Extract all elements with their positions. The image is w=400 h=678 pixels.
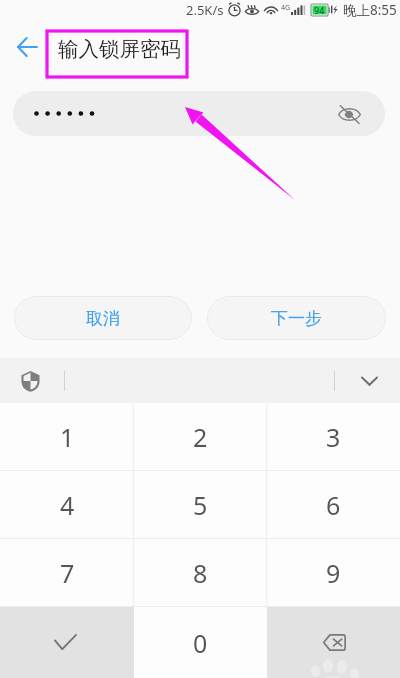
button[interactable]: 1 (0, 403, 134, 471)
staticText: 5 (193, 488, 208, 522)
staticText: 1 (60, 420, 75, 454)
button[interactable]: 取消 (14, 296, 192, 340)
staticText: 0 (193, 626, 208, 660)
button[interactable]: 6 (267, 471, 400, 539)
button[interactable]: Secure input (17, 368, 43, 394)
staticText: 6 (326, 488, 341, 522)
staticText: 3 (326, 420, 341, 454)
staticText: 2.5K/s (186, 1, 224, 19)
button[interactable]: 3 (267, 403, 400, 471)
button[interactable]: Confirm (0, 607, 134, 678)
staticText: 2 (193, 420, 208, 454)
button[interactable]: 0 (134, 607, 267, 678)
staticText: 取消 (86, 308, 120, 329)
staticText: 9 (326, 556, 341, 590)
staticText: 94 (314, 4, 325, 16)
button[interactable]: 7 (0, 539, 134, 607)
staticText: 8 (193, 556, 208, 590)
button[interactable]: Show password (13, 91, 385, 136)
button[interactable]: 9 (267, 539, 400, 607)
button[interactable]: 4 (0, 471, 134, 539)
staticText: 4G (281, 3, 291, 13)
button[interactable]: 5 (134, 471, 267, 539)
staticText: 输入锁屏密码 (58, 36, 181, 62)
button[interactable]: 下一步 (207, 296, 386, 340)
button[interactable]: Backspace (267, 607, 400, 678)
button[interactable]: 8 (134, 539, 267, 607)
staticText: 下一步 (271, 308, 322, 329)
button[interactable]: Hide keyboard (355, 367, 383, 395)
staticText: 7 (60, 556, 75, 590)
staticText: 晚上8:55 (343, 1, 397, 19)
button[interactable]: Back (4, 23, 51, 70)
button[interactable]: Show password (335, 100, 363, 128)
button[interactable]: 2 (134, 403, 267, 471)
staticText: 4 (60, 488, 75, 522)
